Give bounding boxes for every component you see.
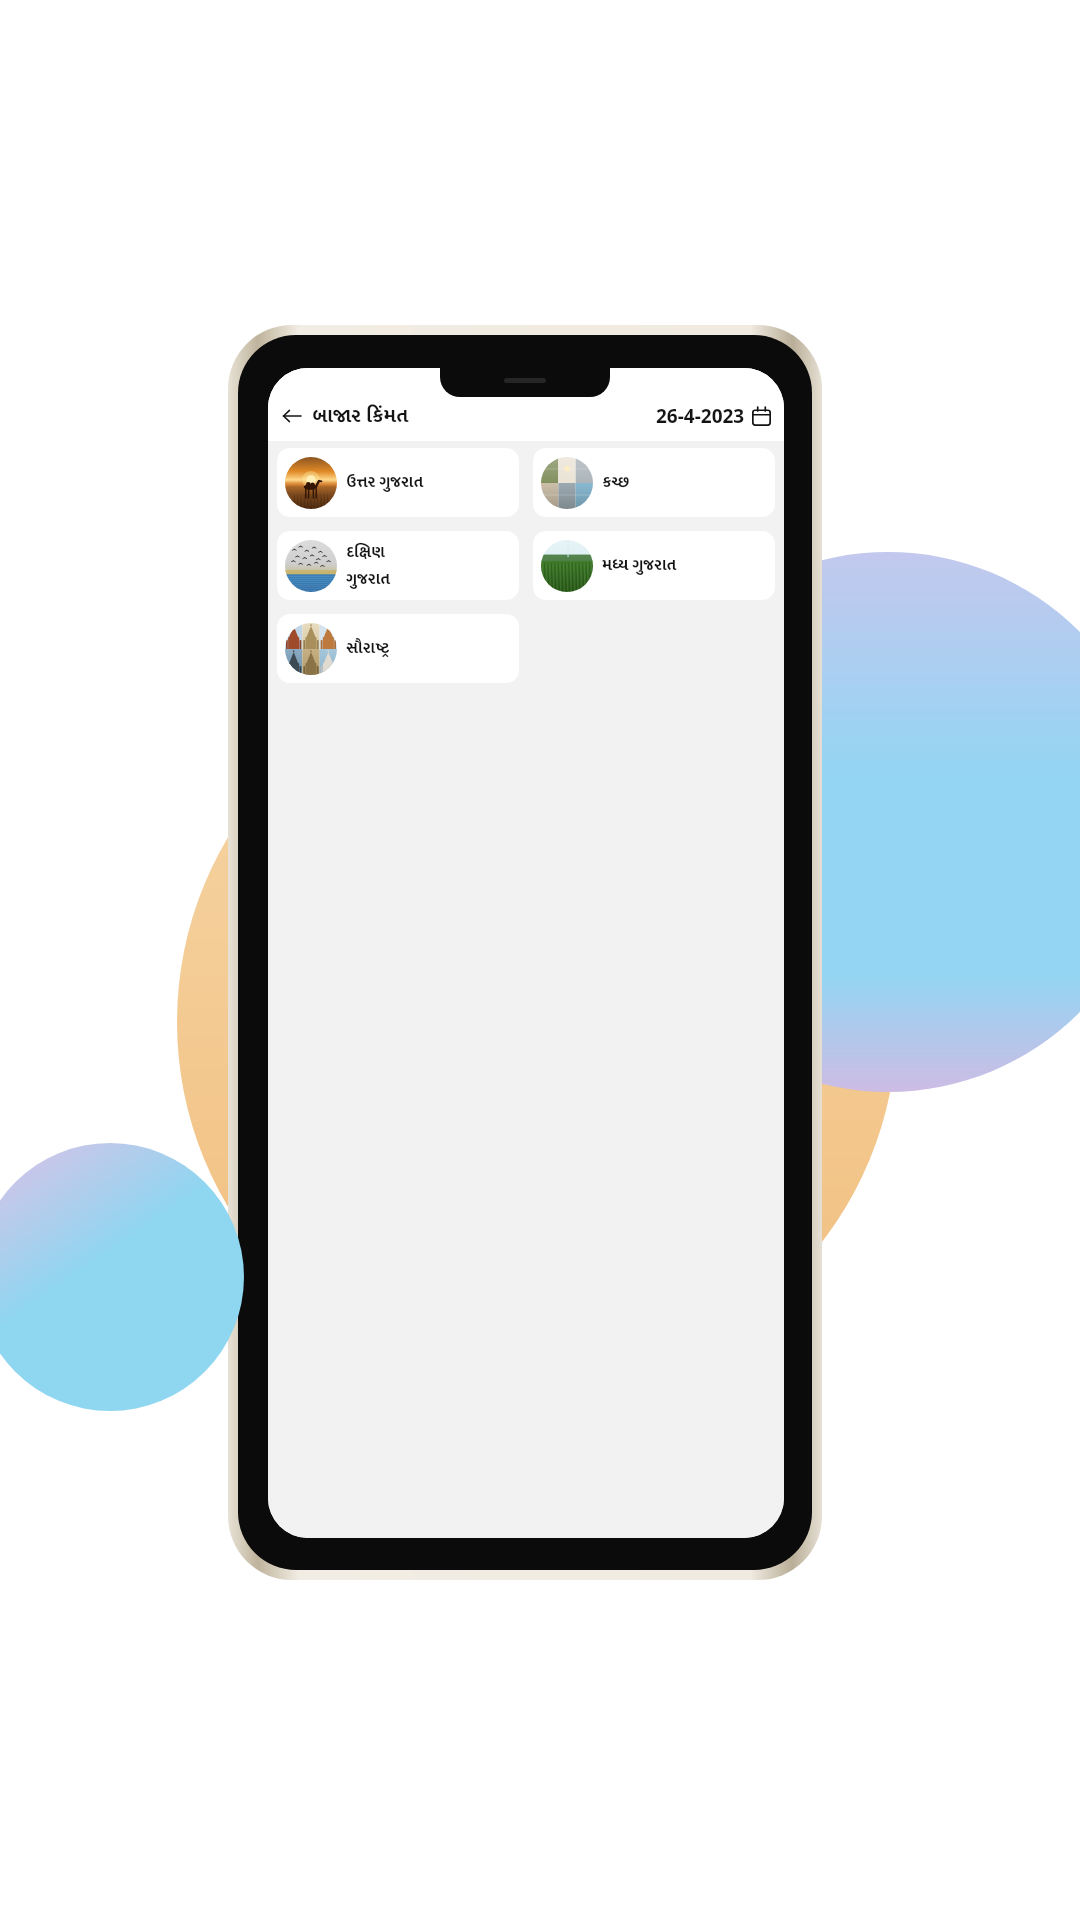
staticText: મધ્ય ગુજરાત (602, 552, 677, 579)
button[interactable]: 26-4-2023 (654, 401, 774, 431)
staticText: કચ્છ (602, 469, 630, 496)
staticText: બાજાર કિંમત (312, 399, 409, 432)
button[interactable]: સૌરાષ્ટ્ર (277, 614, 519, 683)
button[interactable]: Back (277, 401, 307, 431)
staticText: સૌરાષ્ટ્ર (346, 635, 390, 662)
button[interactable]: મધ્ય ગુજરાત (533, 531, 775, 600)
staticText: 26-4-2023 (656, 403, 745, 429)
staticText: ઉત્તર ગુજરાત (346, 469, 423, 496)
button[interactable]: કચ્છ (533, 448, 775, 517)
staticText: દક્ષિણ ગુજરાત (346, 539, 390, 593)
button[interactable]: ઉત્તર ગુજરાત (277, 448, 519, 517)
button[interactable]: દક્ષિણ ગુજરાત (277, 531, 519, 600)
other: Pick date (751, 406, 772, 427)
